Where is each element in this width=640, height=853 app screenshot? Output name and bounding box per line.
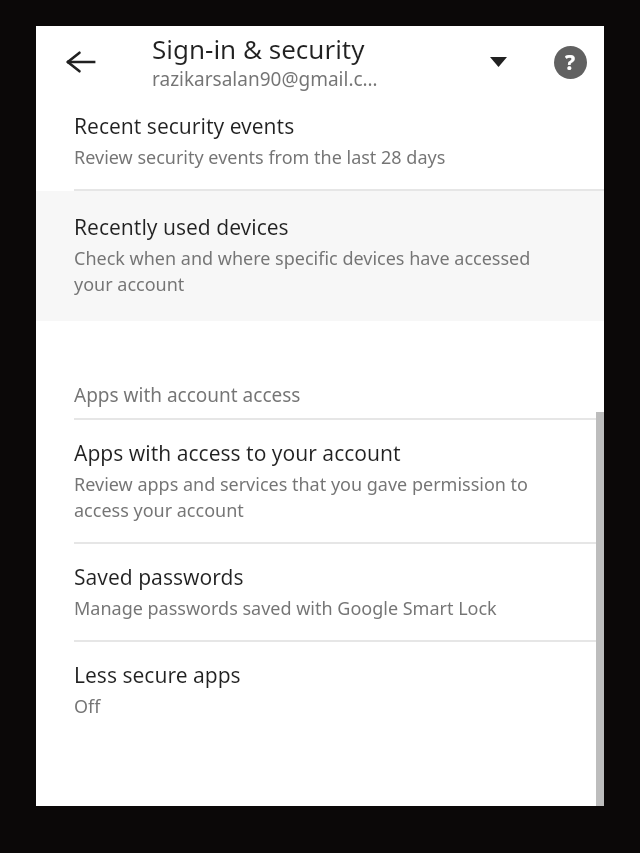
staticText: Less secure apps [74,661,241,690]
staticText: razikarsalan90@gmail.c… [152,66,378,92]
button[interactable]: Switch account [475,39,521,85]
staticText: Recently used devices [74,213,289,242]
button[interactable]: Saved passwords [36,544,604,640]
staticText: Manage passwords saved with Google Smart… [74,596,497,621]
staticText: Check when and where specific devices ha… [74,246,538,297]
button[interactable]: Recent security events [36,97,604,189]
staticText: Apps with access to your account [74,439,401,468]
button[interactable]: Help [548,40,592,84]
staticText: Off [74,694,101,719]
button[interactable]: Back [57,38,105,86]
staticText: Apps with account access [74,382,301,408]
staticText: Sign-in & security [152,31,365,66]
staticText: Saved passwords [74,563,244,592]
staticText: Review security events from the last 28 … [74,145,446,170]
staticText: Review apps and services that you gave p… [74,472,538,523]
staticText: Recent security events [74,112,295,141]
staticText: ? [565,48,576,77]
button[interactable]: Apps with access to your account [36,420,604,542]
button[interactable]: Less secure apps [36,642,604,738]
button[interactable]: Recently used devices [36,191,604,321]
